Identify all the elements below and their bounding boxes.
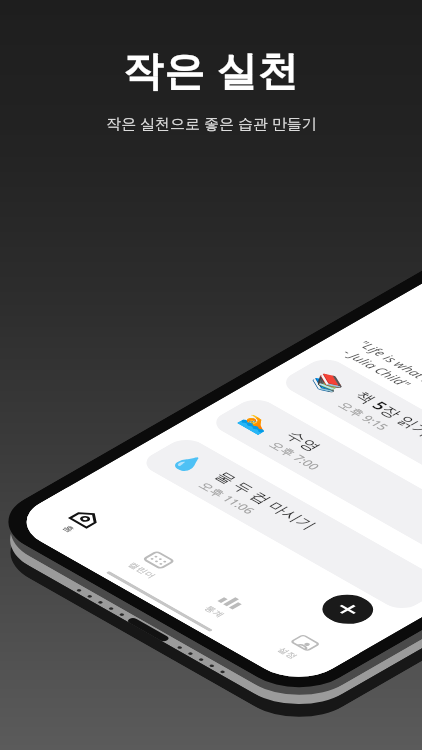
staticText: 오후 7:00 [265, 439, 324, 472]
staticText: 🏊 [234, 410, 281, 437]
staticText: 홈 [61, 523, 78, 534]
staticText: 책 5장 읽기 [348, 388, 422, 440]
staticText: 캘린더 [126, 560, 159, 579]
button[interactable]: 설정 [238, 611, 360, 681]
button[interactable]: 📚 [274, 353, 422, 534]
staticText: 📚 [304, 370, 351, 397]
button[interactable]: 홈 [19, 486, 141, 557]
staticText: 수영 [280, 428, 325, 454]
staticText: 작은 실천 [123, 42, 299, 97]
staticText: - Julia Child" [338, 346, 416, 391]
staticText: 💧 [164, 450, 211, 477]
button[interactable]: 캘린더 [92, 528, 214, 598]
staticText: 작은 실천으로 좋은 습관 만들기 [106, 113, 317, 133]
staticText: 오후 11:06 [195, 479, 260, 516]
button[interactable]: 통계 [165, 569, 287, 640]
staticText: 통계 [202, 604, 227, 618]
button[interactable]: 실천 추가 [311, 588, 384, 631]
staticText: 설정 [275, 645, 300, 660]
button[interactable]: 🏊 [204, 394, 422, 574]
staticText: 오늘의 실천 [302, 357, 422, 444]
staticText: 물 두 컵 마시기 [208, 468, 324, 533]
button[interactable]: 💧 [134, 434, 422, 614]
staticText: "Life is what happens to you while [352, 337, 422, 444]
staticText: 오후 9:15 [334, 399, 393, 432]
